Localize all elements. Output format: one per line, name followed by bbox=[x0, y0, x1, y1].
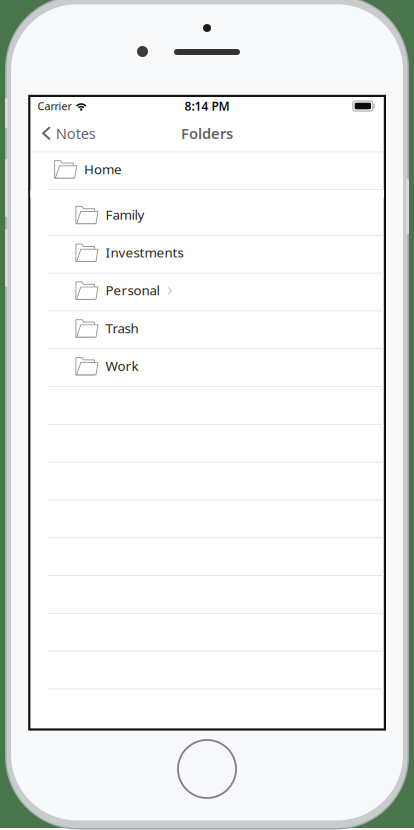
staticText: Home bbox=[84, 160, 122, 178]
button[interactable]: Personal bbox=[30, 273, 384, 311]
staticText: Personal bbox=[105, 281, 159, 299]
staticText: Trash bbox=[105, 319, 138, 337]
staticText: Carrier bbox=[37, 99, 71, 113]
button[interactable]: Family bbox=[30, 198, 384, 236]
staticText: Family bbox=[105, 206, 144, 223]
staticText: Notes bbox=[56, 123, 96, 143]
button[interactable]: Notes bbox=[30, 115, 104, 151]
button[interactable]: Work bbox=[30, 349, 384, 387]
staticText: 8:14 PM bbox=[185, 98, 230, 114]
button[interactable]: Investments bbox=[30, 236, 384, 273]
button[interactable]: Home bbox=[30, 152, 384, 190]
staticText: Folders bbox=[181, 123, 233, 143]
staticText: Investments bbox=[105, 243, 183, 261]
staticText: Work bbox=[105, 357, 138, 375]
button[interactable]: Trash bbox=[30, 311, 384, 349]
